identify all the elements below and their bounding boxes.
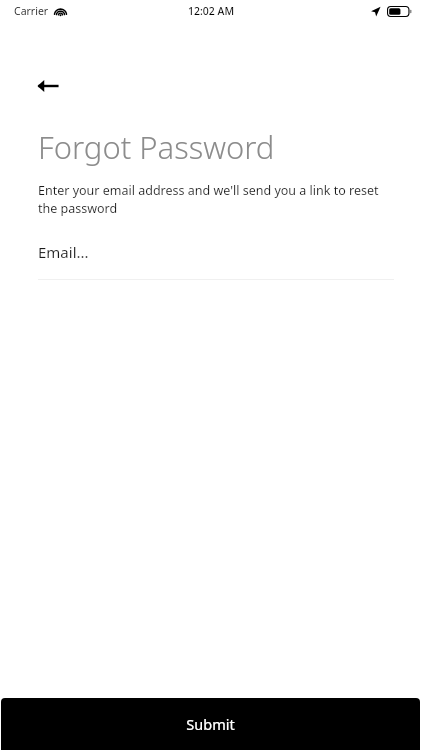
button[interactable]: Email...: [0, 242, 422, 280]
staticText: 12:02 AM: [188, 4, 235, 18]
staticText: Carrier: [14, 4, 49, 18]
staticText: Enter your email address and we'll send …: [38, 182, 388, 216]
staticText: Email...: [38, 242, 89, 262]
button[interactable]: Submit: [1, 698, 420, 750]
staticText: Submit: [186, 714, 235, 734]
staticText: Forgot Password: [38, 126, 275, 168]
button[interactable]: Back: [26, 64, 70, 108]
